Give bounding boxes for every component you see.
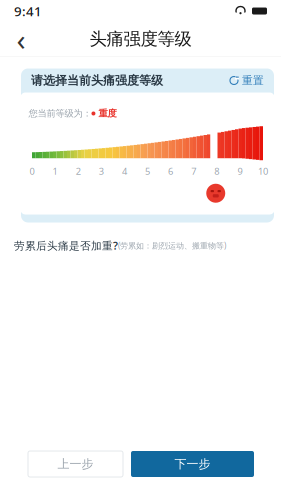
staticText: 上一步 bbox=[57, 457, 93, 471]
staticText: 3 bbox=[99, 165, 104, 177]
button[interactable]: 重置 bbox=[229, 74, 264, 87]
staticText: 2 bbox=[76, 165, 81, 177]
button[interactable]: 上一步 bbox=[28, 451, 123, 477]
staticText: 4 bbox=[122, 165, 127, 177]
staticText: 头痛强度等级 bbox=[89, 28, 191, 50]
staticText: 7 bbox=[191, 165, 196, 177]
staticText: 重置 bbox=[242, 74, 264, 87]
staticText: 您当前等级为： bbox=[28, 108, 91, 119]
button[interactable]: Back bbox=[4, 22, 38, 56]
staticText: 下一步 bbox=[174, 457, 210, 471]
staticText: 劳累后头痛是否加重? bbox=[14, 238, 118, 253]
staticText: 0 bbox=[29, 165, 34, 177]
staticText: (劳累如：剧烈运动、搬重物等) bbox=[118, 240, 226, 251]
staticText: ‹ bbox=[16, 19, 25, 58]
button[interactable]: 下一步 bbox=[131, 451, 254, 477]
staticText: 9:41 bbox=[14, 2, 42, 20]
staticText: 6 bbox=[168, 165, 173, 177]
staticText: 请选择当前头痛强度等级 bbox=[31, 73, 163, 88]
staticText: 重度 bbox=[98, 108, 116, 119]
staticText: 8 bbox=[214, 165, 219, 177]
staticText: 1 bbox=[53, 165, 58, 177]
staticText: 9 bbox=[237, 165, 242, 177]
staticText: 5 bbox=[145, 165, 150, 177]
staticText: 10 bbox=[258, 165, 268, 177]
